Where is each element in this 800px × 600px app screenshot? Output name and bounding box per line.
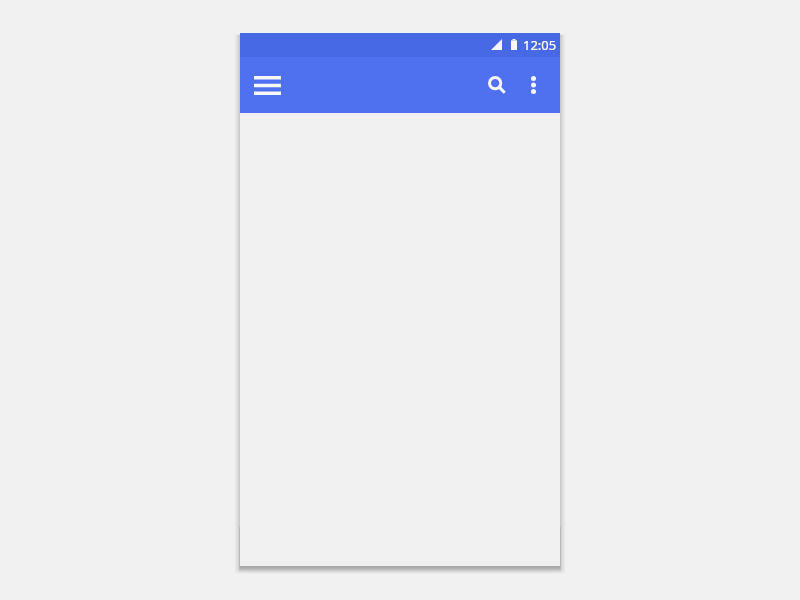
staticText: 12:05 [523,36,557,54]
button[interactable]: More options [515,64,551,106]
button[interactable]: Navigation menu [243,61,291,109]
button[interactable]: Search [478,64,520,106]
